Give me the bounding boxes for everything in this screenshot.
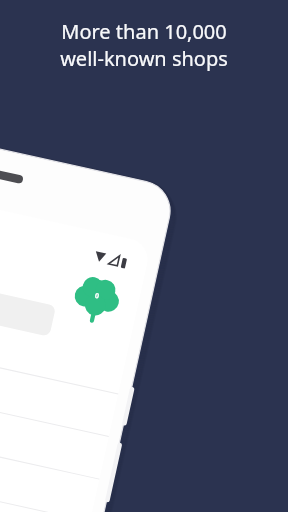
- button[interactable]: App preview on phone: [0, 0, 288, 512]
- staticText: More than 10,000 well-known shops: [14, 18, 274, 72]
